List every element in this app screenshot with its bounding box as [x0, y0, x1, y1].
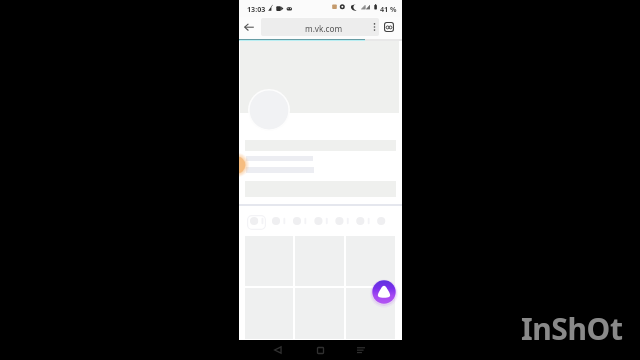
- staticText: m.vk.com: [305, 23, 343, 34]
- button[interactable]: m.vk.com: [261, 18, 379, 36]
- button[interactable]: Photo: [346, 236, 395, 286]
- button[interactable]: Back: [269, 341, 287, 359]
- staticText: 13:03: [247, 4, 266, 14]
- button[interactable]: Add story: [247, 215, 266, 230]
- button[interactable]: Alice assistant: [372, 280, 396, 304]
- button[interactable]: Recent apps: [352, 341, 370, 359]
- button[interactable]: Photo: [346, 288, 395, 339]
- staticText: InShOt: [521, 308, 623, 349]
- staticText: 41 %: [380, 4, 397, 14]
- button[interactable]: Tabs: [380, 18, 398, 36]
- button[interactable]: Home: [311, 341, 329, 359]
- button[interactable]: Back: [240, 18, 258, 36]
